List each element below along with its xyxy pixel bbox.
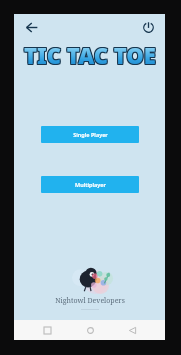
button[interactable]: Multiplayer — [41, 176, 139, 193]
staticText: TIC TAC TOE — [24, 41, 156, 71]
button[interactable]: Recents — [37, 320, 57, 340]
staticText: Nightowl Developers — [55, 296, 125, 306]
button[interactable]: Exit — [137, 16, 159, 38]
button[interactable]: Home — [80, 320, 100, 340]
staticText: TIC TAC TOE — [23, 41, 155, 71]
staticText: TIC TAC TOE — [25, 39, 157, 69]
button[interactable]: Back — [20, 16, 42, 38]
staticText: TIC TAC TOE — [24, 40, 156, 70]
button[interactable]: Single Player — [41, 126, 139, 143]
staticText: TIC TAC TOE — [25, 40, 157, 70]
staticText: TIC TAC TOE — [23, 40, 155, 70]
staticText: TIC TAC TOE — [25, 41, 157, 71]
staticText: TIC TAC TOE — [23, 39, 155, 69]
staticText: Multiplayer — [75, 181, 106, 188]
button[interactable]: Back — [122, 320, 142, 340]
staticText: TIC TAC TOE — [24, 39, 156, 69]
staticText: Single Player — [73, 131, 108, 138]
